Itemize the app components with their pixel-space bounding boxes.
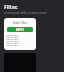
button[interactable]: Option item <box>4 44 36 46</box>
staticText: APPLY <box>16 28 25 32</box>
staticText: Filter. <box>4 4 18 11</box>
staticText: Select filter <box>4 21 36 25</box>
staticText: Option item <box>6 44 19 46</box>
staticText: Lorem ipsum dolor sit amet consec <box>4 11 47 15</box>
button[interactable]: Option item <box>4 36 36 38</box>
staticText: Option item <box>6 36 19 38</box>
staticText: Option item <box>6 42 19 44</box>
staticText: Option item <box>6 38 19 40</box>
button[interactable]: Option item <box>4 34 36 36</box>
button[interactable]: Option item <box>4 40 36 42</box>
staticText: Option item <box>6 40 19 42</box>
button[interactable]: APPLY <box>7 27 33 32</box>
button[interactable]: Option item <box>4 42 36 44</box>
staticText: Option item <box>6 34 19 36</box>
button[interactable]: Option item <box>4 38 36 40</box>
